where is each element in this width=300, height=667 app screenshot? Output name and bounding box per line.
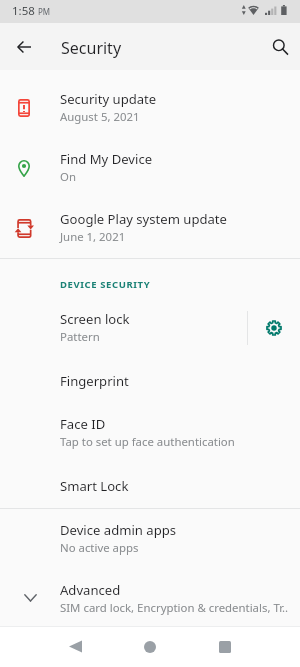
button[interactable]: Back bbox=[0, 23, 47, 70]
button[interactable]: Device admin apps bbox=[0, 509, 300, 569]
staticText: Device admin apps bbox=[60, 521, 177, 539]
staticText: Face ID bbox=[60, 415, 106, 433]
button[interactable]: Security update bbox=[0, 78, 300, 138]
staticText: No active apps bbox=[60, 540, 139, 556]
staticText: Find My Device bbox=[60, 150, 153, 168]
staticText: DEVICE SECURITY bbox=[60, 278, 151, 291]
staticText: Pattern bbox=[60, 329, 100, 345]
button[interactable]: Advanced bbox=[0, 569, 300, 626]
staticText: SIM card lock, Encryption & credentials,… bbox=[60, 600, 289, 616]
staticText: Security update bbox=[60, 90, 157, 108]
button[interactable]: Screen lock settings bbox=[248, 298, 300, 358]
staticText: Fingerprint bbox=[60, 372, 129, 390]
button[interactable]: Find My Device bbox=[0, 138, 300, 198]
staticText: Tap to set up face authentication bbox=[60, 434, 235, 450]
staticText: Screen lock bbox=[60, 310, 130, 328]
button[interactable]: Google Play system update bbox=[0, 198, 300, 258]
staticText: PM bbox=[38, 6, 51, 17]
staticText: June 1, 2021 bbox=[60, 229, 126, 245]
staticText: Google Play system update bbox=[60, 210, 227, 228]
staticText: August 5, 2021 bbox=[60, 109, 140, 125]
button[interactable]: Smart Lock bbox=[0, 463, 300, 508]
button[interactable]: Screen lock bbox=[0, 298, 248, 358]
button[interactable]: Fingerprint bbox=[0, 358, 300, 403]
button[interactable]: Home bbox=[122, 626, 178, 667]
button[interactable]: Search bbox=[253, 23, 300, 70]
staticText: On bbox=[60, 169, 76, 185]
staticText: Security bbox=[61, 37, 122, 59]
staticText: Advanced bbox=[60, 581, 121, 599]
staticText: 1:58 bbox=[12, 3, 35, 19]
staticText: Smart Lock bbox=[60, 477, 129, 495]
button[interactable]: Back bbox=[47, 626, 103, 667]
button[interactable]: Face ID bbox=[0, 403, 300, 463]
button[interactable]: Recent apps bbox=[197, 626, 253, 667]
